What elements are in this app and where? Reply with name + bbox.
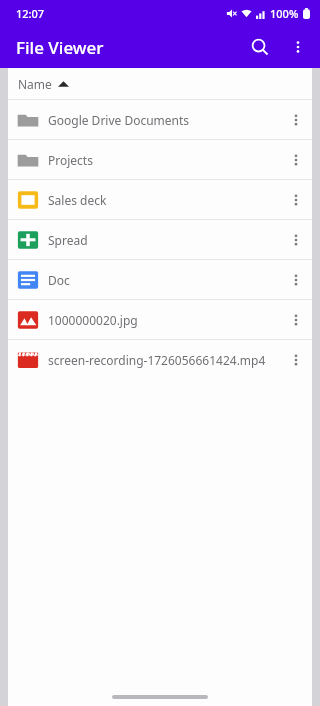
staticText: screen-recording-1726056661424.mp4 <box>48 352 280 368</box>
button[interactable]: Sales deck <box>8 180 312 219</box>
staticText: 100% <box>270 6 299 21</box>
staticText: Google Drive Documents <box>48 112 280 128</box>
button[interactable]: More options for Google Drive Documents <box>280 104 312 136</box>
staticText: 1000000020.jpg <box>48 312 280 328</box>
button[interactable]: Projects <box>8 140 312 179</box>
staticText: Sales deck <box>48 192 280 208</box>
staticText: File Viewer <box>16 36 104 59</box>
button[interactable]: More options <box>280 29 316 65</box>
button[interactable]: 1000000020.jpg <box>8 300 312 339</box>
button[interactable]: More options for Doc <box>280 264 312 296</box>
button[interactable]: More options for 1000000020.jpg <box>280 304 312 336</box>
staticText: Projects <box>48 152 280 168</box>
button[interactable]: screen-recording-1726056661424.mp4 <box>8 340 312 379</box>
staticText: 12:07 <box>16 6 45 21</box>
staticText: Spread <box>48 232 280 248</box>
button[interactable]: Google Drive Documents <box>8 100 312 139</box>
button[interactable]: Name <box>8 68 312 99</box>
button[interactable]: Doc <box>8 260 312 299</box>
button[interactable]: More options for Spread <box>280 224 312 256</box>
button[interactable]: Search <box>240 27 280 67</box>
button[interactable]: Spread <box>8 220 312 259</box>
button[interactable]: More options for screen-recording-172605… <box>280 344 312 376</box>
button[interactable]: More options for Projects <box>280 144 312 176</box>
button[interactable]: More options for Sales deck <box>280 184 312 216</box>
staticText: Doc <box>48 272 280 288</box>
staticText: Name <box>18 76 52 92</box>
